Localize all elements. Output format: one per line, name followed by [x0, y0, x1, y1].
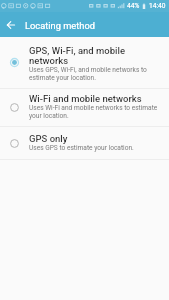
staticText: Locating method: [25, 20, 95, 31]
button[interactable]: Navigate up: [0, 12, 25, 37]
staticText: 44%: [127, 2, 140, 10]
staticText: Uses GPS, Wi-Fi, and mobile networks to …: [29, 66, 147, 82]
staticText: Uses Wi-Fi and mobile networks to estima…: [29, 104, 158, 120]
button[interactable]: GPS only: [0, 127, 169, 159]
staticText: Uses GPS to estimate your location.: [29, 144, 134, 152]
button[interactable]: GPS, Wi-Fi, and mobile networks: [0, 37, 169, 88]
staticText: GPS, Wi-Fi, and mobile networks: [29, 46, 125, 66]
staticText: 14:40: [149, 2, 166, 10]
staticText: GPS only: [29, 134, 68, 144]
staticText: Wi-Fi and mobile networks: [29, 94, 142, 104]
button[interactable]: Wi-Fi and mobile networks: [0, 89, 169, 126]
